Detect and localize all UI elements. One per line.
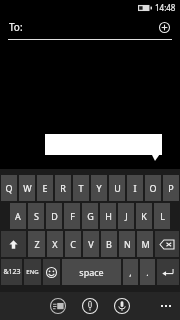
- button[interactable]: ,: [123, 259, 138, 285]
- button[interactable]: D: [46, 203, 62, 229]
- staticText: X: [52, 238, 58, 250]
- staticText: F: [70, 210, 75, 222]
- staticText: U: [114, 182, 121, 194]
- button[interactable]: Backspace: [155, 231, 179, 257]
- button[interactable]: T: [73, 175, 89, 201]
- staticText: G: [87, 210, 94, 222]
- button[interactable]: S: [28, 203, 44, 229]
- button[interactable]: Suggestions: [48, 296, 68, 316]
- staticText: I: [133, 182, 137, 194]
- button[interactable]: Add contact: [156, 19, 172, 35]
- staticText: To:: [9, 20, 23, 34]
- staticText: S: [34, 210, 39, 222]
- staticText: D: [51, 210, 58, 222]
- button[interactable]: .: [140, 259, 155, 285]
- button[interactable]: Shift: [1, 231, 26, 257]
- button[interactable]: J: [118, 203, 134, 229]
- staticText: O: [149, 182, 157, 194]
- button[interactable]: Q: [1, 175, 17, 201]
- staticText: Q: [5, 182, 13, 194]
- button[interactable]: To:: [0, 14, 180, 40]
- staticText: R: [60, 182, 66, 194]
- button[interactable]: G: [82, 203, 98, 229]
- staticText: .: [146, 266, 149, 278]
- button[interactable]: Y: [91, 175, 107, 201]
- button[interactable]: Attach: [80, 296, 100, 316]
- button[interactable]: E: [37, 175, 53, 201]
- button[interactable]: Emoji: [43, 259, 60, 285]
- button[interactable]: P: [163, 175, 179, 201]
- button[interactable]: N: [119, 231, 135, 257]
- staticText: K: [141, 210, 147, 222]
- button[interactable]: Voice input: [112, 296, 132, 316]
- staticText: W: [23, 182, 32, 194]
- staticText: V: [88, 238, 94, 250]
- button[interactable]: V: [83, 231, 99, 257]
- staticText: B: [106, 238, 112, 250]
- staticText: N: [124, 238, 131, 250]
- staticText: C: [70, 238, 76, 250]
- button[interactable]: Z: [28, 231, 45, 257]
- staticText: T: [78, 182, 84, 194]
- button[interactable]: &123: [1, 259, 22, 285]
- button[interactable]: K: [136, 203, 152, 229]
- staticText: space: [79, 266, 104, 278]
- button[interactable]: O: [145, 175, 161, 201]
- button[interactable]: ENG: [24, 259, 41, 285]
- staticText: L: [160, 210, 165, 222]
- button[interactable]: C: [65, 231, 81, 257]
- button[interactable]: M: [137, 231, 153, 257]
- staticText: 14:48: [155, 2, 176, 13]
- button[interactable]: W: [19, 175, 35, 201]
- button[interactable]: More options: [156, 296, 176, 316]
- button[interactable]: X: [47, 231, 63, 257]
- button[interactable]: U: [109, 175, 125, 201]
- button[interactable]: H: [100, 203, 116, 229]
- staticText: P: [168, 182, 174, 194]
- staticText: A: [15, 210, 21, 222]
- staticText: J: [125, 210, 128, 222]
- button[interactable]: R: [55, 175, 71, 201]
- button[interactable]: A: [10, 203, 26, 229]
- staticText: Z: [34, 238, 40, 250]
- button[interactable]: space: [62, 259, 121, 285]
- staticText: M: [141, 238, 150, 250]
- staticText: E: [42, 182, 48, 194]
- staticText: ,: [129, 266, 132, 278]
- button[interactable]: I: [127, 175, 143, 201]
- button[interactable]: L: [154, 203, 170, 229]
- button[interactable]: B: [101, 231, 117, 257]
- staticText: ENG: [26, 268, 39, 276]
- button[interactable]: F: [64, 203, 80, 229]
- staticText: H: [105, 210, 112, 222]
- staticText: &123: [3, 267, 21, 277]
- button[interactable]: Enter: [157, 259, 179, 285]
- staticText: Y: [96, 182, 102, 194]
